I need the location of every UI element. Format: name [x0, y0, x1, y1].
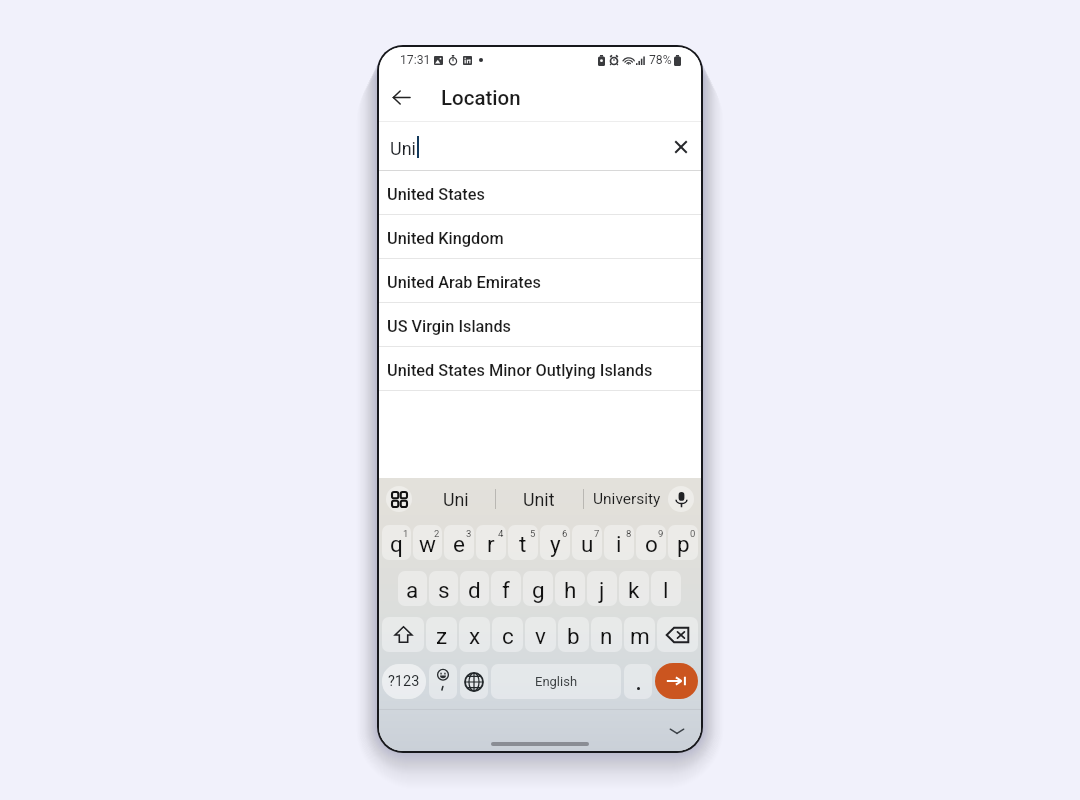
button[interactable]: Enter — [655, 663, 698, 699]
button[interactable]: Emoji — [429, 664, 457, 699]
staticText: i — [616, 531, 622, 557]
button[interactable]: n — [591, 617, 622, 652]
button[interactable]: v — [525, 617, 556, 652]
button[interactable]: United States — [379, 171, 701, 215]
button[interactable]: p — [668, 525, 698, 560]
staticText: 1 — [403, 528, 409, 539]
button[interactable]: Shift — [382, 617, 424, 652]
staticText: English — [535, 674, 578, 689]
staticText: h — [564, 577, 577, 603]
button[interactable]: f — [491, 571, 521, 606]
staticText: g — [532, 577, 545, 603]
button[interactable]: United States Minor Outlying Islands — [379, 347, 701, 391]
staticText: d — [468, 577, 481, 603]
staticText: 3 — [466, 528, 472, 539]
staticText: United Kingdom — [387, 229, 504, 248]
button[interactable]: a — [398, 571, 427, 606]
button[interactable]: b — [558, 617, 589, 652]
staticText: US Virgin Islands — [387, 317, 511, 336]
staticText: c — [502, 623, 514, 649]
button[interactable]: h — [555, 571, 585, 606]
staticText: t — [519, 531, 527, 557]
button[interactable]: Clear search — [664, 130, 698, 164]
button[interactable]: Clipboard — [386, 486, 412, 512]
button[interactable]: t — [508, 525, 538, 560]
staticText: v — [535, 623, 546, 649]
button[interactable]: Voice input — [668, 486, 694, 512]
staticText: e — [453, 531, 465, 557]
button[interactable]: x — [459, 617, 490, 652]
staticText: 4 — [498, 528, 504, 539]
staticText: Location — [441, 86, 521, 110]
button[interactable]: United Arab Emirates — [379, 259, 701, 303]
button[interactable]: m — [624, 617, 655, 652]
staticText: 5 — [530, 528, 536, 539]
staticText: n — [600, 623, 613, 649]
staticText: 0 — [690, 528, 696, 539]
staticText: 7 — [594, 528, 600, 539]
staticText: j — [599, 577, 605, 603]
staticText: United States — [387, 185, 485, 204]
staticText: l — [663, 577, 669, 603]
button[interactable]: Uni — [379, 122, 701, 171]
staticText: u — [581, 531, 594, 557]
button[interactable]: g — [523, 571, 553, 606]
button[interactable]: k — [619, 571, 649, 606]
staticText: Unit — [523, 489, 555, 510]
button[interactable]: Backspace — [657, 617, 698, 652]
button[interactable]: Hide keyboard — [661, 715, 693, 747]
button[interactable]: q — [382, 525, 411, 560]
button[interactable]: w — [413, 525, 442, 560]
staticText: 6 — [562, 528, 568, 539]
button[interactable]: US Virgin Islands — [379, 303, 701, 347]
button[interactable]: r — [476, 525, 506, 560]
staticText: b — [567, 623, 580, 649]
staticText: z — [436, 623, 448, 649]
staticText: 17:31 — [400, 53, 431, 67]
staticText: Uni — [443, 489, 469, 510]
button[interactable]: ?123 — [382, 664, 426, 699]
button[interactable]: Uni — [417, 478, 494, 520]
button[interactable]: u — [572, 525, 602, 560]
staticText: Uni — [390, 138, 416, 159]
staticText: 78% — [649, 53, 672, 67]
button[interactable]: i — [604, 525, 634, 560]
staticText: m — [630, 623, 650, 649]
button[interactable]: Back — [381, 77, 421, 117]
button[interactable]: o — [636, 525, 666, 560]
button[interactable]: Change language — [460, 664, 488, 699]
button[interactable]: e — [444, 525, 474, 560]
staticText: k — [628, 577, 640, 603]
button[interactable]: English — [491, 664, 621, 699]
button[interactable]: j — [587, 571, 617, 606]
button[interactable]: d — [460, 571, 489, 606]
button[interactable]: University — [583, 478, 670, 520]
button[interactable]: c — [492, 617, 523, 652]
button[interactable] — [624, 664, 652, 699]
staticText: United States Minor Outlying Islands — [387, 361, 653, 380]
button[interactable]: l — [651, 571, 681, 606]
staticText: ?123 — [388, 673, 420, 690]
button[interactable]: y — [540, 525, 570, 560]
staticText: University — [593, 490, 661, 508]
button[interactable]: s — [429, 571, 458, 606]
button[interactable]: z — [426, 617, 457, 652]
staticText: f — [502, 577, 510, 603]
staticText: o — [645, 531, 658, 557]
staticText: q — [390, 531, 403, 557]
staticText: 8 — [626, 528, 632, 539]
staticText: w — [419, 531, 436, 557]
staticText: United Arab Emirates — [387, 273, 541, 292]
staticText: a — [406, 577, 419, 603]
button[interactable]: United Kingdom — [379, 215, 701, 259]
staticText: p — [677, 531, 690, 557]
staticText: x — [469, 623, 481, 649]
staticText: 9 — [658, 528, 664, 539]
staticText: y — [550, 531, 561, 557]
staticText: 2 — [434, 528, 440, 539]
staticText: s — [438, 577, 450, 603]
button[interactable]: Unit — [500, 478, 577, 520]
staticText: r — [487, 531, 495, 557]
